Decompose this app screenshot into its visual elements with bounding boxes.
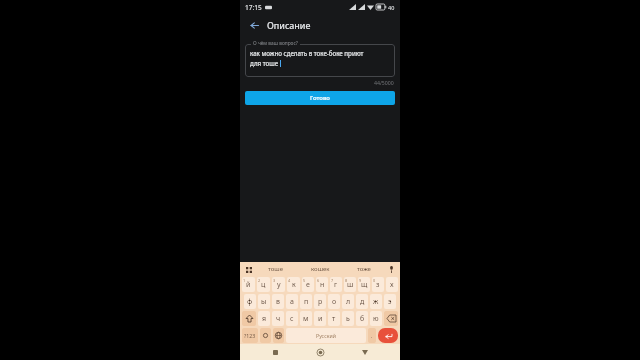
- staticText: О чём ваш вопрос?: [253, 40, 298, 47]
- staticText: й: [246, 280, 251, 290]
- staticText: Описание: [267, 19, 311, 31]
- button[interactable]: ч: [272, 311, 284, 326]
- staticText: г: [334, 280, 338, 290]
- button[interactable]: ш: [344, 277, 356, 292]
- button[interactable]: г: [330, 277, 342, 292]
- staticText: Русский: [316, 332, 336, 339]
- staticText: ь: [346, 314, 350, 324]
- staticText: .: [371, 332, 373, 339]
- button[interactable]: щ: [358, 277, 370, 292]
- staticText: к: [292, 280, 296, 290]
- button[interactable]: [242, 311, 256, 326]
- staticText: 9: [359, 278, 362, 283]
- button[interactable]: п: [300, 294, 312, 309]
- staticText: ю: [373, 314, 379, 324]
- staticText: с: [290, 314, 294, 324]
- button[interactable]: и: [314, 311, 326, 326]
- staticText: ?123: [244, 332, 256, 339]
- button[interactable]: Готово: [245, 91, 395, 105]
- button[interactable]: ь: [342, 311, 354, 326]
- staticText: 2: [258, 278, 261, 283]
- button[interactable]: а: [286, 294, 298, 309]
- staticText: 40: [388, 4, 395, 11]
- button[interactable]: как можно сделать в токе-боке приют: [245, 44, 395, 77]
- staticText: кошек: [311, 265, 330, 273]
- button[interactable]: м: [300, 311, 312, 326]
- staticText: х: [390, 280, 394, 290]
- staticText: щ: [361, 280, 368, 290]
- staticText: я: [262, 314, 267, 324]
- staticText: ч: [276, 314, 281, 324]
- staticText: б: [360, 314, 365, 324]
- button[interactable]: х: [386, 277, 398, 292]
- button[interactable]: Назад: [355, 344, 375, 360]
- button[interactable]: ф: [244, 294, 256, 309]
- staticText: е: [306, 280, 310, 290]
- staticText: з: [376, 280, 380, 290]
- button[interactable]: т: [328, 311, 340, 326]
- button[interactable]: э: [384, 294, 396, 309]
- staticText: и: [318, 314, 323, 324]
- button[interactable]: ц: [257, 277, 270, 292]
- button[interactable]: Эмодзи: [260, 328, 271, 343]
- staticText: в: [276, 297, 280, 307]
- button[interactable]: .: [368, 328, 376, 343]
- staticText: р: [318, 297, 323, 307]
- button[interactable]: у: [272, 277, 285, 292]
- button[interactable]: Ввод: [378, 328, 398, 343]
- staticText: а: [290, 297, 294, 307]
- button[interactable]: д: [356, 294, 368, 309]
- button[interactable]: я: [258, 311, 270, 326]
- button[interactable]: л: [342, 294, 354, 309]
- button[interactable]: Голосовой ввод: [386, 264, 396, 274]
- button[interactable]: о: [328, 294, 340, 309]
- staticText: у: [277, 280, 281, 290]
- button[interactable]: Сменить язык: [273, 328, 284, 343]
- button[interactable]: к: [287, 277, 300, 292]
- staticText: для тоше: [250, 59, 279, 67]
- button[interactable]: з: [372, 277, 384, 292]
- button[interactable]: ж: [370, 294, 382, 309]
- button[interactable]: Недавние: [265, 344, 285, 360]
- staticText: ц: [261, 280, 266, 290]
- button[interactable]: с: [286, 311, 298, 326]
- staticText: д: [360, 297, 365, 307]
- staticText: э: [388, 297, 392, 307]
- staticText: как можно сделать в токе-боке приют: [250, 49, 364, 57]
- button[interactable]: е: [302, 277, 314, 292]
- button[interactable]: ?123: [242, 328, 258, 343]
- staticText: н: [320, 280, 325, 290]
- staticText: 1: [243, 278, 246, 283]
- staticText: 44/5000: [374, 79, 394, 86]
- staticText: 8: [345, 278, 348, 283]
- staticText: 17:15: [245, 3, 262, 12]
- staticText: 7: [331, 278, 334, 283]
- button[interactable]: ю: [370, 311, 382, 326]
- staticText: 6: [317, 278, 320, 283]
- button[interactable]: Русский: [286, 328, 366, 343]
- button[interactable]: н: [316, 277, 328, 292]
- button[interactable]: Главная: [310, 344, 330, 360]
- button[interactable]: тоже: [342, 262, 386, 276]
- button[interactable]: в: [272, 294, 284, 309]
- staticText: о: [332, 297, 337, 307]
- staticText: 5: [303, 278, 306, 283]
- staticText: 4: [288, 278, 291, 283]
- button[interactable]: б: [356, 311, 368, 326]
- button[interactable]: Меню: [244, 265, 253, 274]
- button[interactable]: [384, 311, 398, 326]
- staticText: Готово: [310, 94, 330, 102]
- staticText: ы: [261, 297, 267, 307]
- staticText: м: [303, 314, 309, 324]
- button[interactable]: й: [242, 277, 255, 292]
- button[interactable]: тоше: [253, 262, 298, 276]
- button[interactable]: р: [314, 294, 326, 309]
- button[interactable]: ы: [258, 294, 270, 309]
- staticText: л: [346, 297, 351, 307]
- staticText: ш: [347, 280, 354, 290]
- button[interactable]: кошек: [298, 262, 342, 276]
- staticText: т: [332, 314, 336, 324]
- staticText: тоже: [357, 265, 371, 273]
- button[interactable]: Назад: [245, 16, 263, 34]
- staticText: 0: [373, 278, 376, 283]
